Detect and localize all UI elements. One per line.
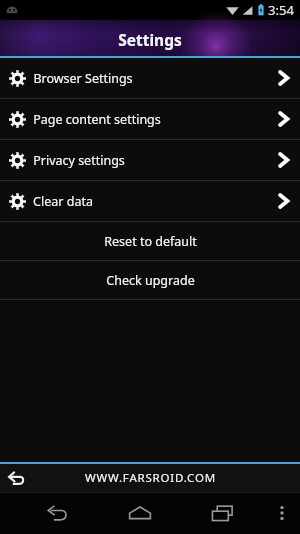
staticText: Reset to default bbox=[104, 233, 197, 250]
staticText: Page content settings bbox=[33, 111, 161, 128]
button[interactable]: Check upgrade bbox=[0, 261, 300, 299]
button[interactable]: Home bbox=[98, 492, 181, 534]
button[interactable]: Recent apps bbox=[181, 492, 264, 534]
staticText: 3:54 bbox=[268, 1, 294, 19]
button[interactable]: Browser Settings bbox=[0, 58, 300, 98]
staticText: Clear data bbox=[33, 193, 93, 210]
button[interactable]: Privacy settings bbox=[0, 140, 300, 180]
button[interactable]: Back bbox=[14, 492, 98, 534]
button[interactable]: More options bbox=[264, 492, 300, 534]
staticText: Browser Settings bbox=[33, 70, 133, 87]
staticText: WWW.FARSROID.COM bbox=[85, 470, 216, 486]
button[interactable]: Page content settings bbox=[0, 99, 300, 139]
button[interactable]: Reset to default bbox=[0, 222, 300, 260]
staticText: Privacy settings bbox=[33, 152, 125, 169]
staticText: Settings bbox=[118, 29, 182, 50]
button[interactable]: Back bbox=[0, 465, 30, 491]
staticText: Check upgrade bbox=[106, 272, 195, 289]
button[interactable]: Clear data bbox=[0, 181, 300, 221]
